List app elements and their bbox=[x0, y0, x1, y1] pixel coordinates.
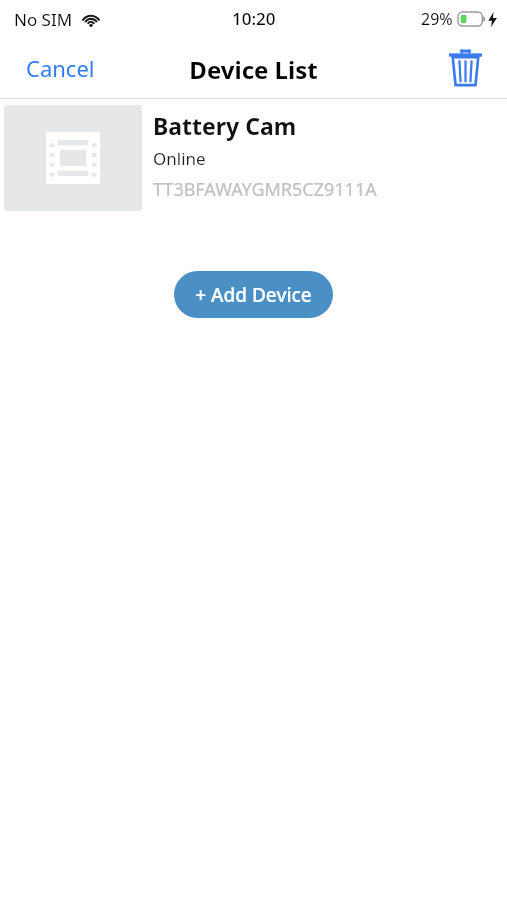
staticText: + Add Device bbox=[195, 282, 312, 308]
staticText: Cancel bbox=[26, 53, 95, 83]
staticText: 10:20 bbox=[232, 7, 276, 30]
staticText: Online bbox=[153, 147, 206, 170]
button[interactable]: + Add Device bbox=[174, 271, 333, 318]
button[interactable]: Delete bbox=[443, 46, 487, 90]
staticText: TT3BFAWAYGMR5CZ9111A bbox=[153, 177, 377, 202]
staticText: Battery Cam bbox=[153, 110, 297, 141]
button[interactable]: Battery Cam bbox=[0, 99, 507, 212]
staticText: No SIM bbox=[14, 8, 73, 31]
button[interactable]: Cancel bbox=[0, 45, 121, 91]
staticText: 29% bbox=[421, 8, 453, 30]
staticText: Device List bbox=[189, 53, 318, 86]
